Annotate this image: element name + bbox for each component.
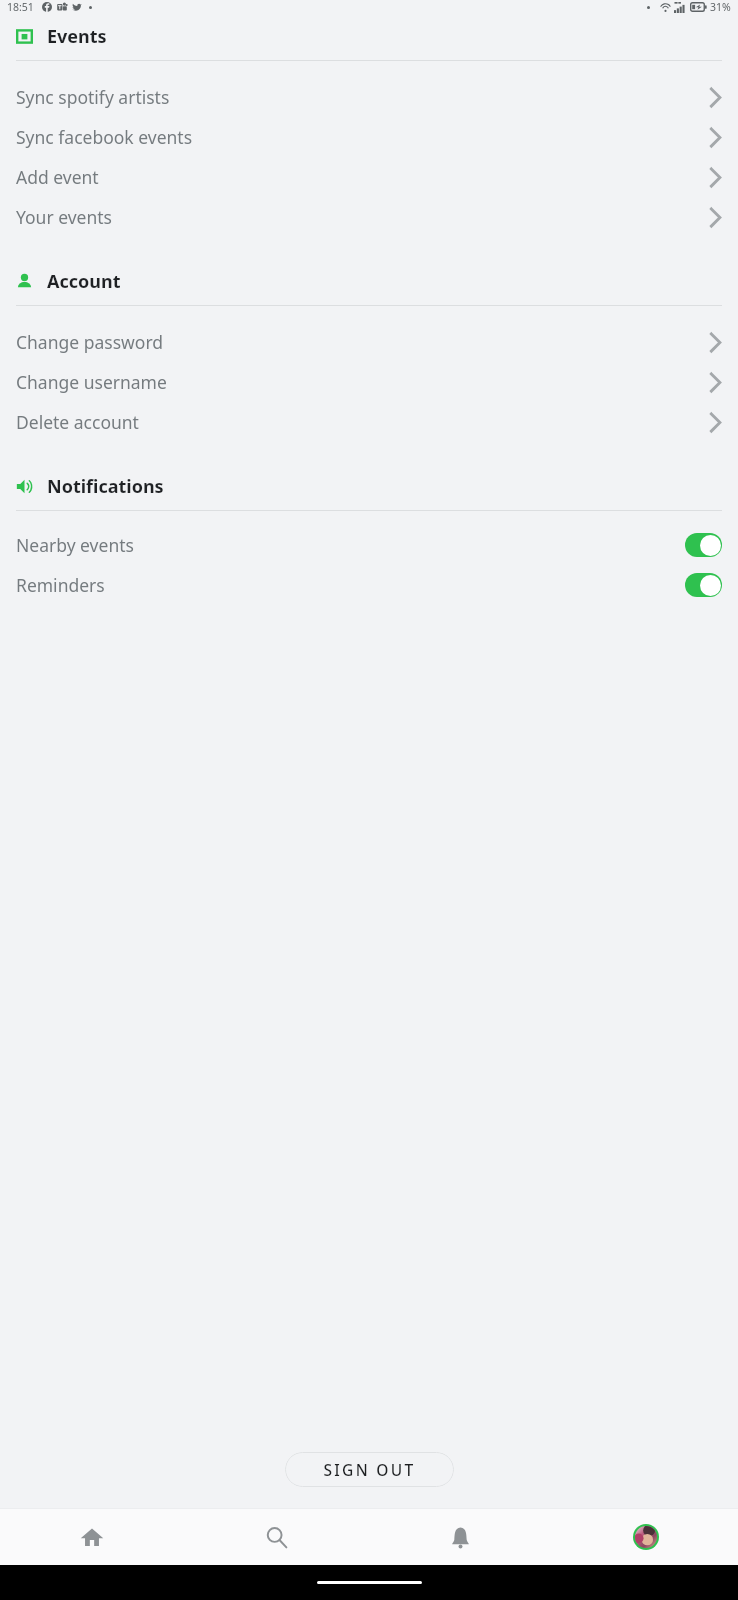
staticText: 18:51 <box>7 0 34 14</box>
staticText: Sync facebook events <box>16 125 193 149</box>
staticText: Events <box>47 24 107 49</box>
button[interactable]: Profile <box>553 1509 738 1565</box>
button[interactable]: SIGN OUT <box>285 1452 454 1487</box>
button[interactable]: Notifications <box>368 1509 553 1565</box>
button[interactable]: Delete account <box>0 402 738 442</box>
staticText: Account <box>47 269 121 294</box>
staticText: Change username <box>16 370 167 394</box>
staticText: 31% <box>710 0 731 14</box>
button[interactable]: Sync spotify artists <box>0 77 738 117</box>
button[interactable]: Change password <box>0 322 738 362</box>
staticText: Sync spotify artists <box>16 85 170 109</box>
staticText: Delete account <box>16 410 139 434</box>
staticText: SIGN OUT <box>323 1459 416 1480</box>
button[interactable]: Toggle Nearby events <box>685 533 722 557</box>
button[interactable]: Sync facebook events <box>0 117 738 157</box>
button[interactable]: Search <box>184 1509 368 1565</box>
button[interactable]: Add event <box>0 157 738 197</box>
staticText: Notifications <box>47 474 164 499</box>
staticText: Change password <box>16 330 164 354</box>
button[interactable]: Change username <box>0 362 738 402</box>
button[interactable]: Home <box>0 1509 184 1565</box>
button[interactable]: Your events <box>0 197 738 237</box>
button[interactable]: Toggle Reminders <box>685 573 722 597</box>
staticText: Reminders <box>16 573 105 597</box>
staticText: Your events <box>16 205 113 229</box>
staticText: Nearby events <box>16 533 134 557</box>
staticText: Add event <box>16 165 99 189</box>
